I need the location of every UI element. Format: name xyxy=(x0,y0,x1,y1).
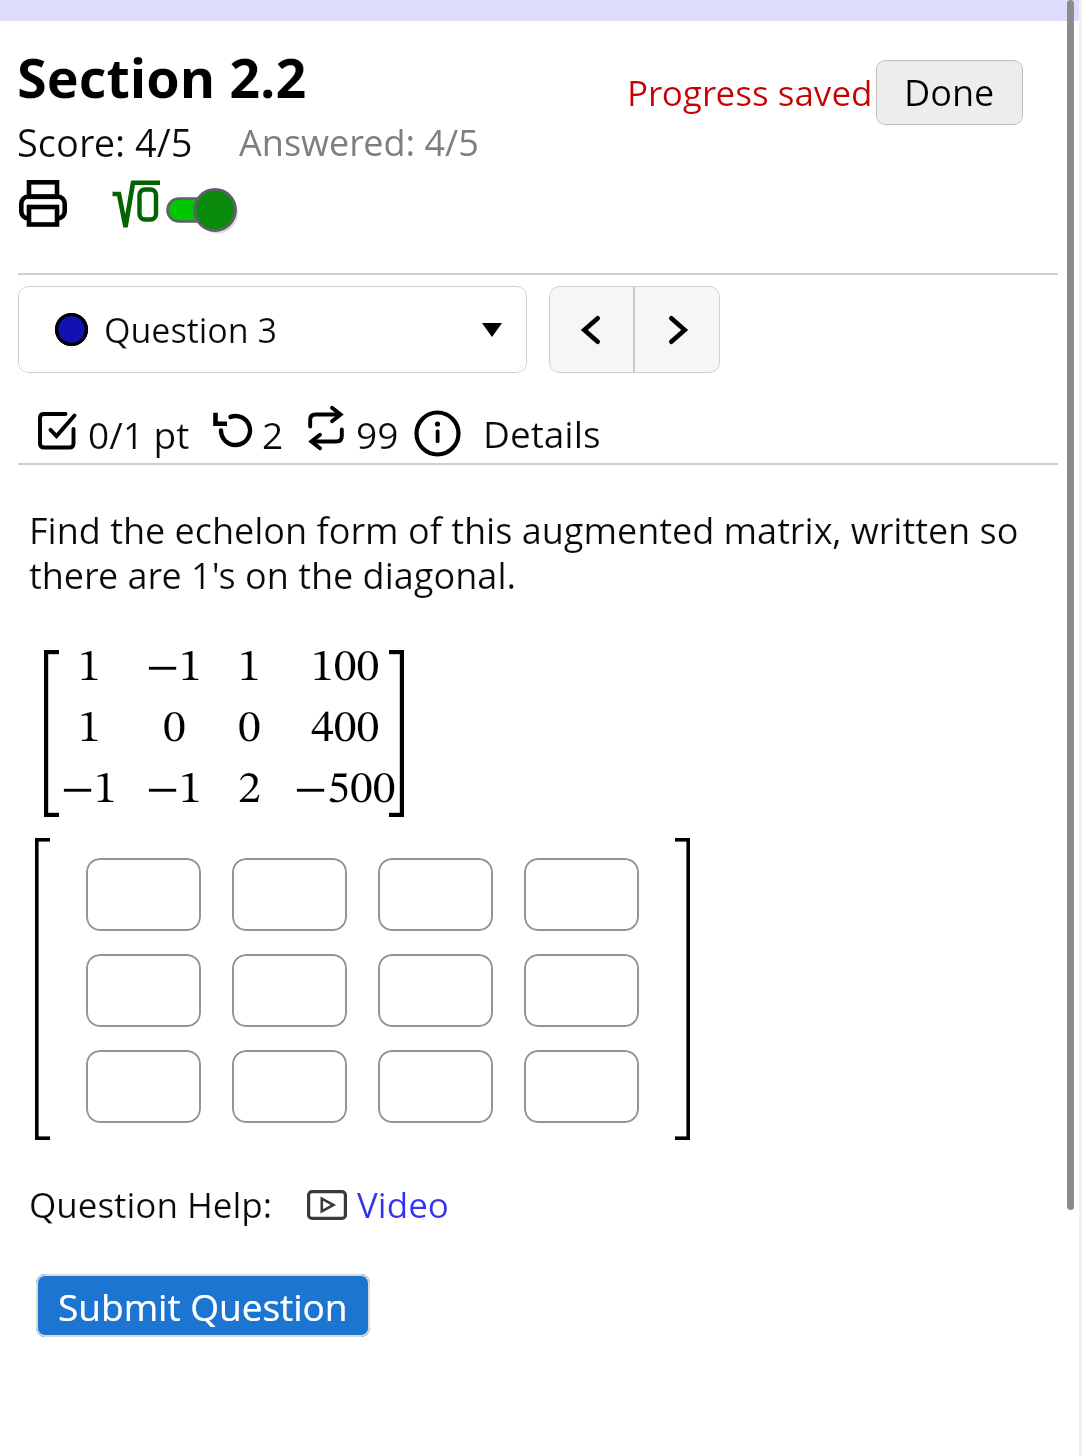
button[interactable]: Video xyxy=(307,1181,449,1229)
staticText: −1 xyxy=(146,767,202,813)
staticText: −500 xyxy=(294,767,396,813)
staticText: Details xyxy=(483,408,601,458)
staticText: 0 xyxy=(238,706,261,752)
staticText: Question Help: xyxy=(29,1181,273,1229)
button[interactable] xyxy=(378,954,493,1027)
button[interactable] xyxy=(86,1050,201,1123)
staticText: Question 3 xyxy=(104,307,277,353)
button[interactable]: Previous question xyxy=(549,286,633,373)
staticText: 0 xyxy=(163,706,186,752)
staticText: Video xyxy=(357,1181,449,1229)
staticText: −1 xyxy=(61,767,117,813)
staticText: Answered: 4/5 xyxy=(239,118,479,167)
button[interactable] xyxy=(524,954,639,1027)
button[interactable]: Toggle math entry xyxy=(112,181,185,229)
button[interactable]: Question 3 xyxy=(18,286,527,373)
button[interactable]: Next question xyxy=(635,286,720,373)
button[interactable] xyxy=(86,954,201,1027)
staticText: Done xyxy=(904,68,995,117)
button[interactable]: Done xyxy=(876,60,1023,125)
button[interactable] xyxy=(232,858,347,931)
staticText: 1 xyxy=(78,645,101,691)
staticText: 100 xyxy=(311,645,380,691)
button[interactable]: Details xyxy=(414,408,601,458)
staticText: 2 xyxy=(262,409,284,459)
staticText: −1 xyxy=(146,645,202,691)
button[interactable] xyxy=(232,954,347,1027)
staticText: 400 xyxy=(311,706,380,752)
staticText: 1 xyxy=(238,645,261,691)
staticText: 2 xyxy=(238,767,261,813)
staticText: 1 xyxy=(78,706,101,752)
staticText: Section 2.2 xyxy=(17,40,307,114)
staticText: Submit Question xyxy=(58,1281,348,1331)
button[interactable] xyxy=(86,858,201,931)
button[interactable]: Submit Question xyxy=(36,1274,370,1337)
staticText: 99 xyxy=(356,409,399,459)
staticText: Progress saved xyxy=(627,69,873,117)
button[interactable] xyxy=(378,858,493,931)
staticText: 0/1 pt xyxy=(88,409,190,459)
staticText: Score: 4/5 xyxy=(17,116,193,168)
button[interactable] xyxy=(378,1050,493,1123)
staticText: Find the echelon form of this augmented … xyxy=(29,506,1019,599)
button[interactable]: Print xyxy=(19,180,67,227)
button[interactable] xyxy=(524,1050,639,1123)
button[interactable] xyxy=(232,1050,347,1123)
button[interactable] xyxy=(524,858,639,931)
